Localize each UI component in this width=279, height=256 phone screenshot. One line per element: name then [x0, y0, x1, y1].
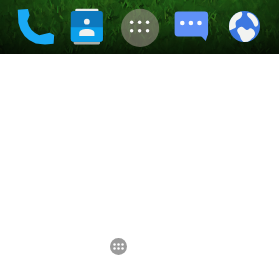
button[interactable]: All apps — [110, 238, 127, 255]
